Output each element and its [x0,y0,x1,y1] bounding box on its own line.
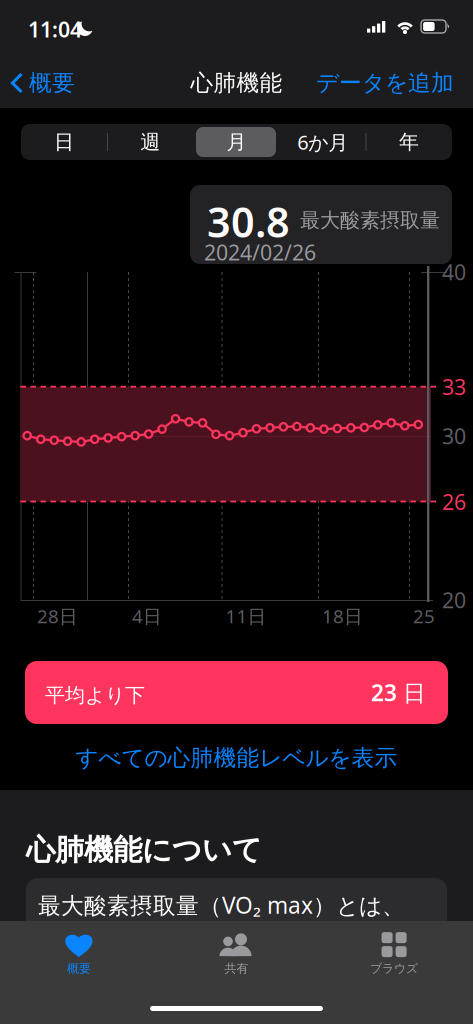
staticText: 11:04 [28,15,82,43]
staticText: 4日 [132,604,162,628]
staticText: 週 [140,130,160,154]
button[interactable]: 月 [193,124,280,160]
staticText: ブラウズ [370,961,418,976]
staticText: 概要 [29,69,75,97]
staticText: 20 [442,586,466,614]
staticText: 30 [442,422,466,450]
button[interactable]: データを追加 [296,68,454,98]
button[interactable]: ブラウズ [315,923,473,985]
staticText: すべての心肺機能レベルを表示 [75,744,397,772]
staticText: 平均より下 [45,683,145,708]
staticText: 最大酸素摂取量（VO₂ max）とは、 [38,890,405,920]
staticText: 30.8 [207,194,290,249]
button[interactable]: 概要 [0,923,158,985]
button[interactable]: すべての心肺機能レベルを表示 [0,742,473,774]
staticText: 40 [442,258,466,286]
staticText: 心肺機能について [26,832,262,868]
staticText: 26 [442,487,466,516]
staticText: 25 [413,604,435,628]
staticText: 共有 [224,961,248,976]
staticText: 33 [442,373,466,401]
staticText: 23 日 [371,677,426,707]
staticText: 18日 [322,604,363,628]
button[interactable]: 6か月 [280,124,366,160]
staticText: 28日 [37,604,78,628]
button[interactable]: 概要 [9,68,139,98]
staticText: 最大酸素摂取量 [300,208,440,233]
staticText: 年 [399,130,419,154]
button[interactable]: 週 [107,124,193,160]
staticText: 概要 [67,961,91,976]
button[interactable]: 日 [21,124,107,160]
button[interactable]: 共有 [158,923,315,985]
button[interactable]: 年 [366,124,452,160]
staticText: 2024/02/26 [204,238,316,266]
staticText: 11日 [225,604,266,628]
staticText: 6か月 [297,129,348,155]
staticText: データを追加 [316,69,454,97]
staticText: 日 [54,130,74,154]
button[interactable]: 平均より下 [25,661,448,724]
staticText: 心肺機能 [190,69,282,97]
staticText: 月 [226,130,246,154]
